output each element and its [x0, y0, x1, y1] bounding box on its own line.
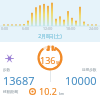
- button[interactable]: 目標歩数: [65, 68, 97, 88]
- staticText: 0:00: [1, 26, 9, 31]
- staticText: 13687: [3, 73, 35, 88]
- staticText: 6:00: [22, 26, 30, 31]
- button[interactable]: 歩数: [3, 68, 35, 88]
- staticText: 18:00: [66, 26, 76, 31]
- staticText: %: [56, 60, 60, 66]
- staticText: km: [59, 91, 65, 96]
- staticText: 移動距離: [3, 89, 19, 94]
- staticText: 136: [40, 54, 56, 66]
- staticText: 2月8日(土): [38, 33, 62, 40]
- button[interactable]: 0:00: [0, 0, 100, 42]
- staticText: 10000: [65, 73, 97, 88]
- staticText: 12:00: [43, 26, 53, 31]
- staticText: 24:00: [89, 26, 99, 31]
- staticText: 10.2: [39, 85, 57, 97]
- button[interactable]: 移動距離: [3, 85, 97, 97]
- staticText: 目標歩数: [82, 68, 97, 73]
- button[interactable]: Step goal progress 136 percent: [36, 44, 64, 72]
- staticText: 歩数: [3, 68, 11, 73]
- button[interactable]: Sleep: [0, 44, 15, 72]
